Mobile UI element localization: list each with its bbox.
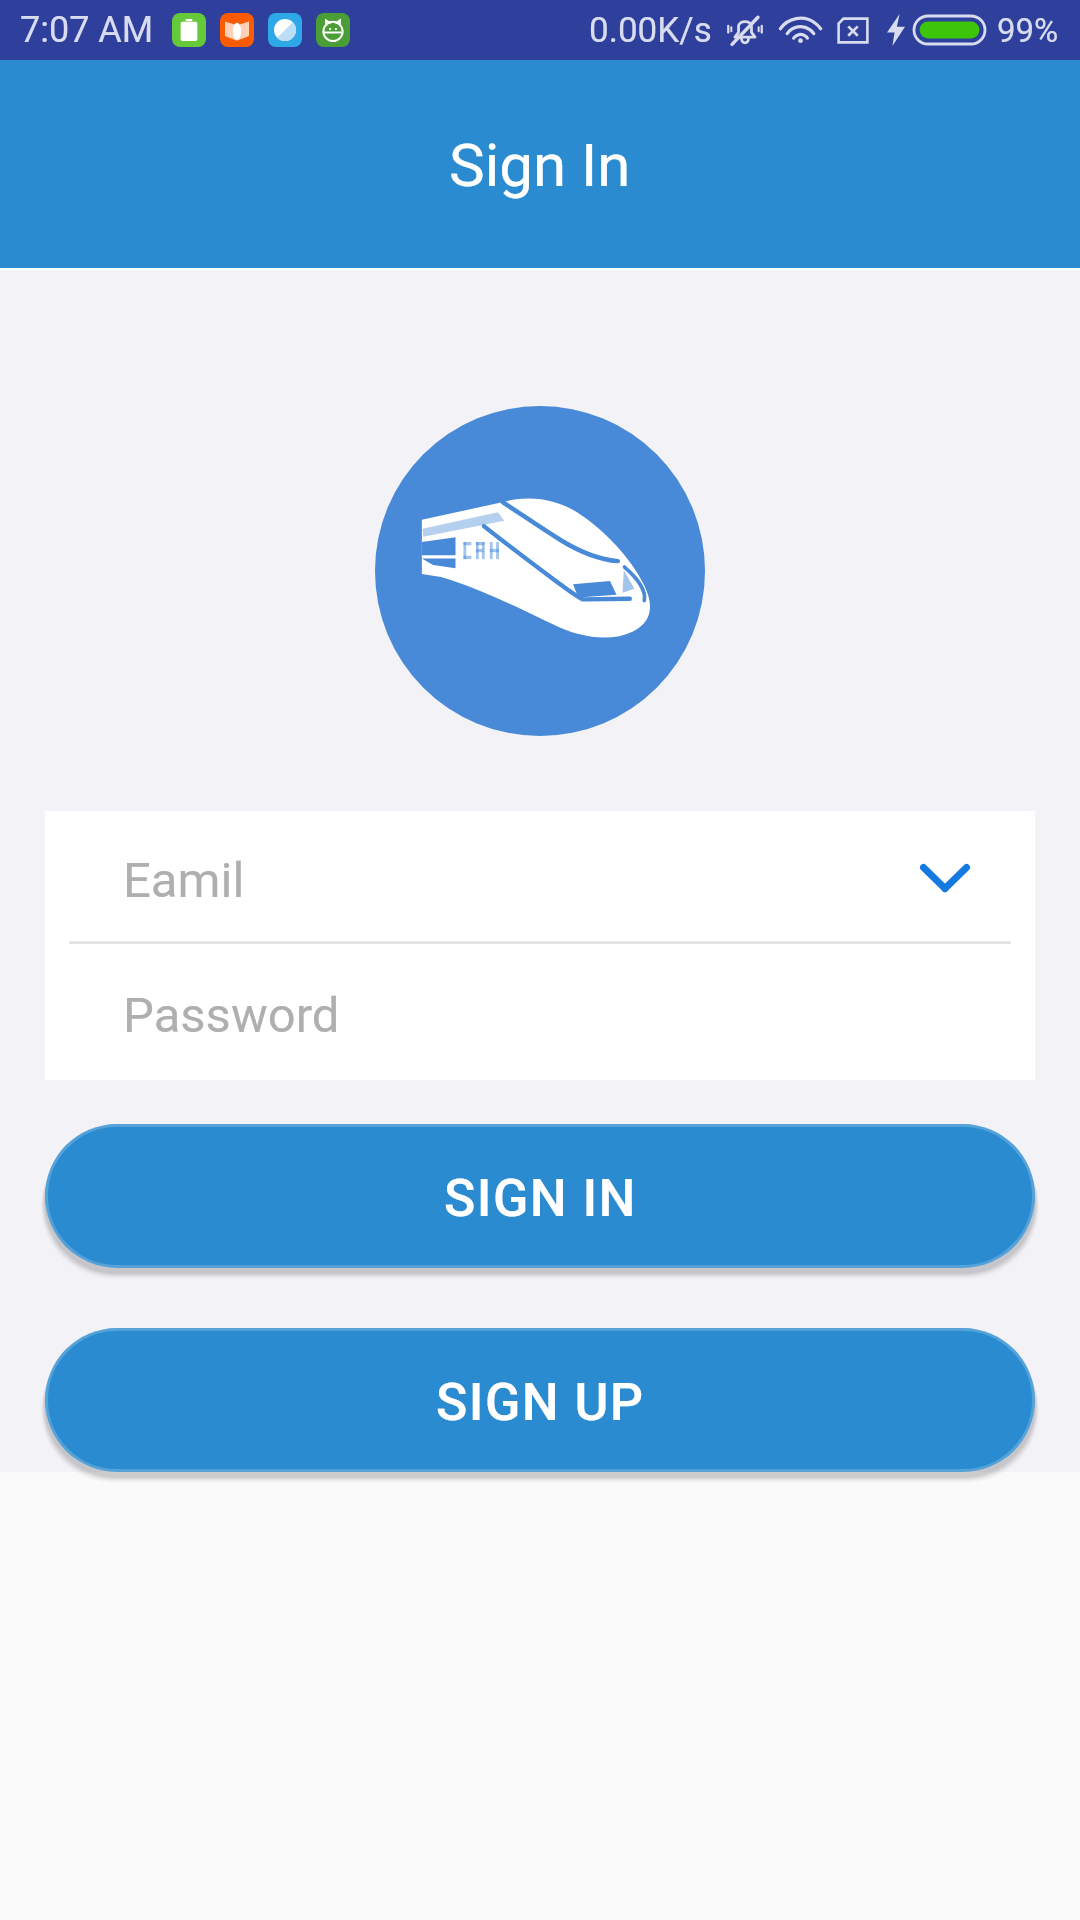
button[interactable]: Eamil <box>45 811 1035 944</box>
staticText: 99% <box>997 11 1059 50</box>
staticText: SIGN IN <box>444 1168 637 1229</box>
staticText: SIGN UP <box>436 1372 645 1433</box>
button[interactable]: Password <box>45 944 1035 1080</box>
staticText: Eamil <box>123 852 245 909</box>
staticText: Sign In <box>449 130 631 200</box>
staticText: 7:07 AM <box>20 9 154 51</box>
button[interactable]: SIGN UP <box>45 1328 1035 1472</box>
button[interactable]: SIGN IN <box>45 1124 1035 1268</box>
staticText: Password <box>123 987 340 1044</box>
staticText: 0.00K/s <box>589 10 712 51</box>
button[interactable]: Show email suggestions <box>897 830 993 926</box>
